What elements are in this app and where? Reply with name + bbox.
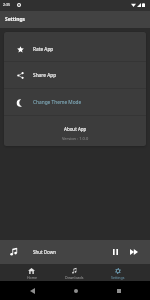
button[interactable]: Change Theme Mode	[4, 89, 146, 115]
button[interactable]: Pause	[110, 247, 120, 257]
staticText: Settings	[111, 275, 125, 280]
staticText: Shut Down	[33, 249, 57, 255]
staticText: Rate App	[33, 46, 54, 53]
staticText: Settings	[5, 16, 26, 23]
staticText: Home	[27, 275, 37, 280]
button[interactable]: About App	[4, 116, 146, 146]
staticText: About App	[64, 126, 87, 132]
button[interactable]: Share App	[4, 62, 146, 88]
button[interactable]: Home	[54, 289, 97, 293]
button[interactable]: Home	[10, 264, 53, 281]
staticText: Change Theme Mode	[33, 99, 82, 106]
staticText: Downloads	[65, 275, 84, 280]
staticText: Share App	[33, 72, 57, 79]
button[interactable]: Back	[10, 288, 54, 294]
staticText: 2:35	[3, 2, 10, 7]
button[interactable]: Settings	[96, 264, 139, 281]
button[interactable]: Downloads	[53, 264, 96, 281]
button[interactable]: Recents	[97, 289, 140, 293]
button[interactable]: Next	[129, 247, 139, 257]
staticText: Version : 1.0.0	[62, 136, 89, 141]
button[interactable]: Rate App	[4, 32, 146, 61]
